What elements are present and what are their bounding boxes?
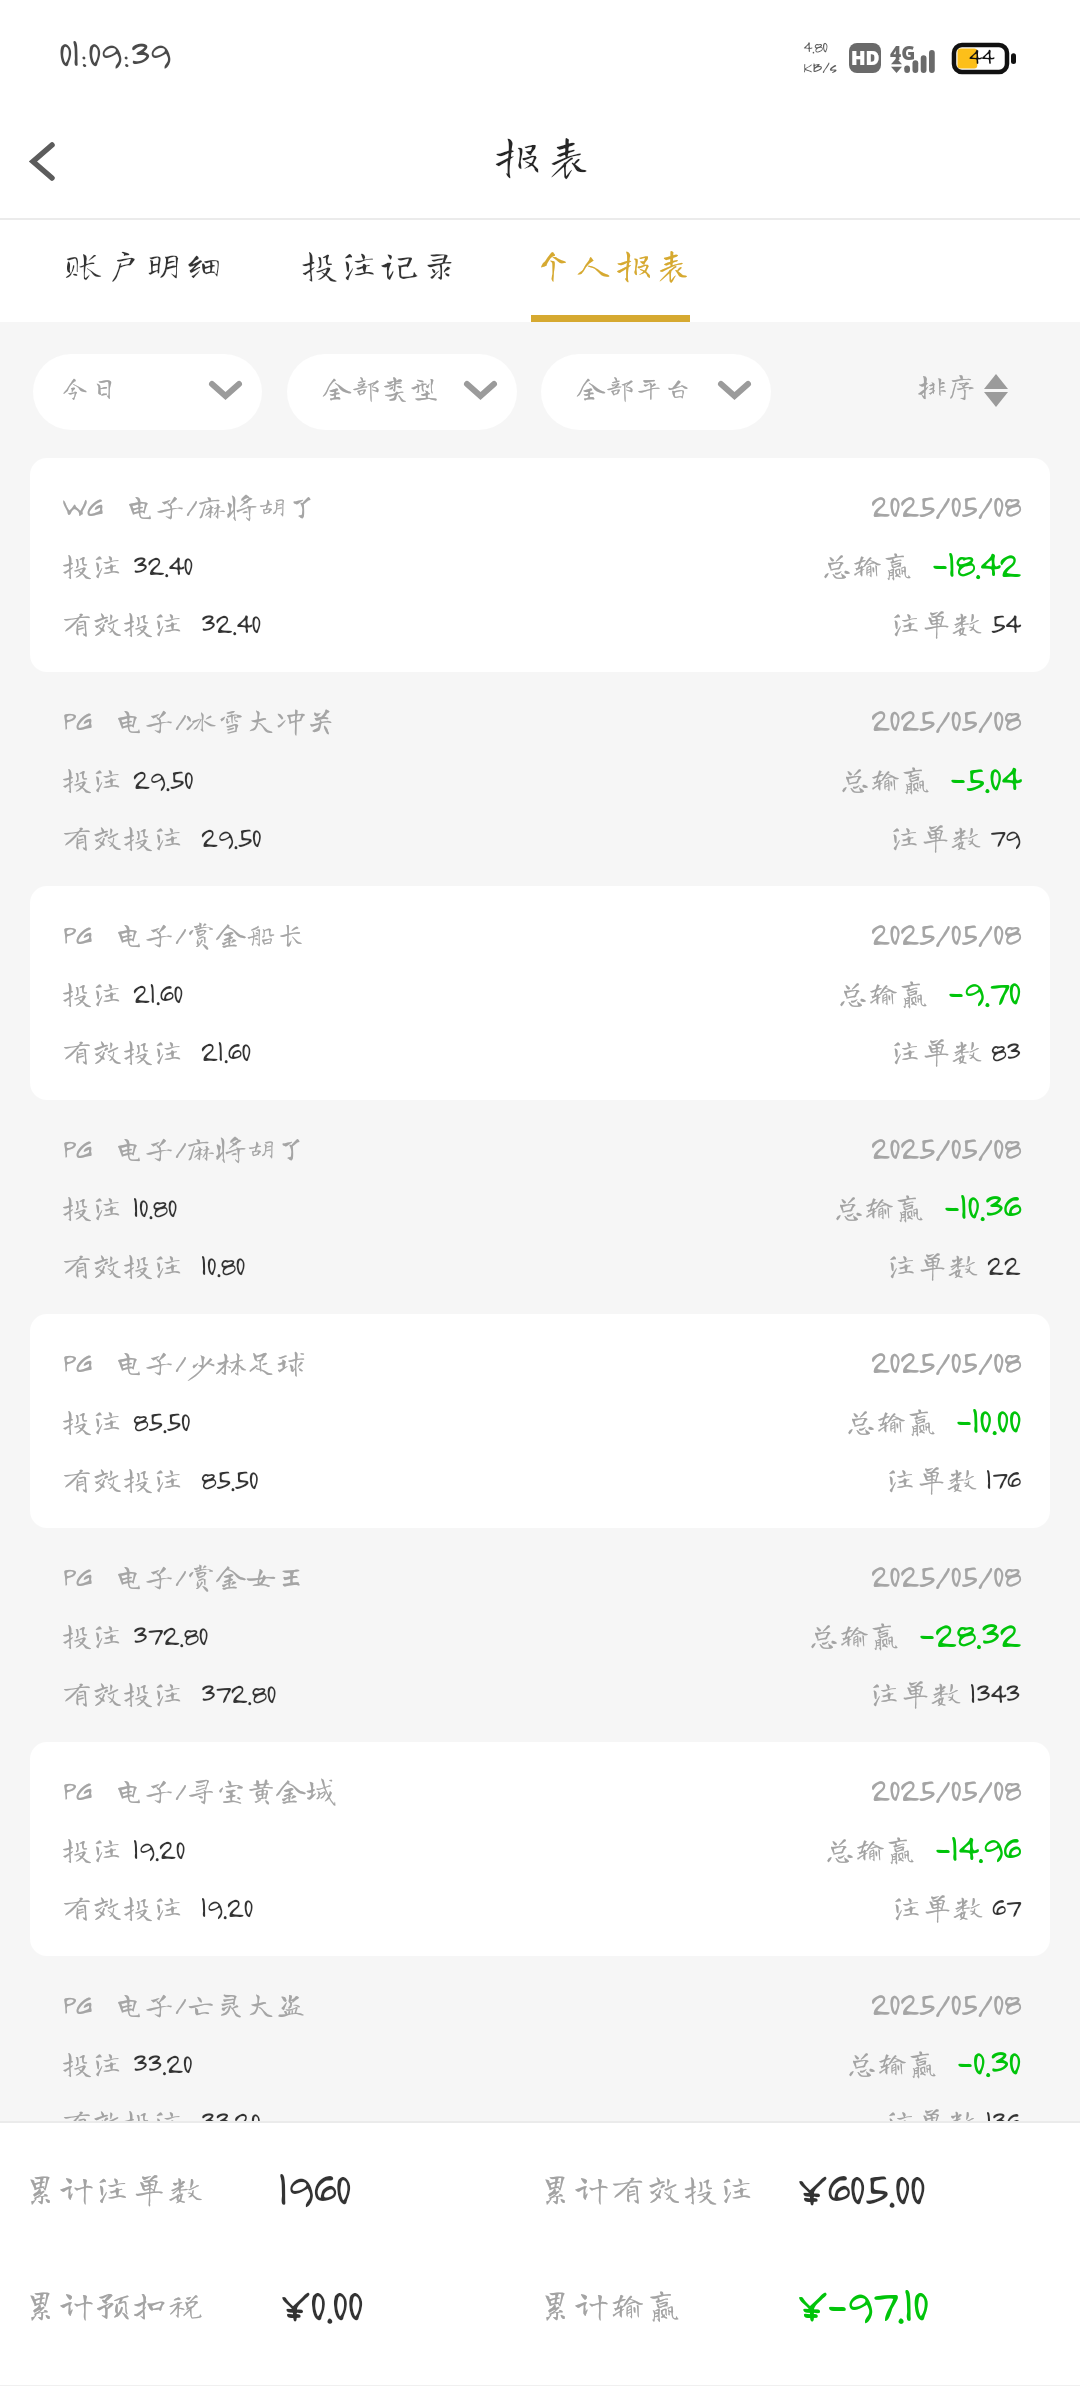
staticText: 0.00 — [309, 2274, 362, 2332]
button[interactable]: 账户明细 — [51, 220, 211, 322]
staticText: 44 — [968, 40, 994, 70]
staticText: 1960 — [277, 2158, 350, 2216]
staticText: 32.40 — [132, 546, 193, 582]
staticText: 总输赢 — [838, 978, 930, 1008]
staticText: -5.04 — [949, 754, 1020, 800]
button[interactable]: Back — [0, 113, 104, 217]
staticText: -10.00 — [955, 1396, 1020, 1442]
staticText: 有效投注 — [62, 2106, 184, 2121]
staticText: -9.70 — [947, 968, 1020, 1014]
staticText: 注单数 — [890, 822, 982, 852]
staticText: 有效投注 — [62, 608, 184, 638]
staticText: PG — [62, 1770, 92, 1808]
staticText: 有效投注 — [62, 1250, 184, 1280]
staticText: 10.80 — [200, 1246, 245, 1282]
button[interactable]: 全部类型 — [287, 354, 517, 430]
staticText: 29.50 — [200, 818, 261, 854]
staticText: 372.80 — [200, 1674, 276, 1710]
staticText: 有效投注 — [62, 1036, 184, 1066]
button[interactable]: PG — [30, 886, 1050, 1100]
staticText: 有效投注 — [62, 1678, 184, 1708]
staticText: ¥ — [797, 2274, 821, 2332]
staticText: ¥ — [280, 2274, 304, 2332]
staticText: 今日 — [61, 373, 120, 401]
staticText: 32.40 — [200, 604, 261, 640]
staticText: 176 — [985, 1460, 1020, 1496]
button[interactable]: PG — [30, 1742, 1050, 1956]
button[interactable]: 排序 Sort — [918, 374, 1012, 407]
staticText: 累计有效投注 — [538, 2171, 757, 2205]
staticText: 个人报表 — [535, 245, 695, 282]
staticText: 4G — [890, 40, 916, 66]
staticText: 605.00 — [826, 2158, 924, 2216]
button[interactable]: PG — [30, 1100, 1050, 1314]
staticText: 电子/少林足球 — [114, 1347, 307, 1377]
staticText: 2025/05/08 — [870, 1983, 1020, 2023]
staticText: 累计输赢 — [538, 2287, 684, 2321]
staticText: 33.20 — [200, 2102, 260, 2121]
staticText: 投注 — [62, 764, 123, 794]
staticText: 投注 — [62, 1834, 123, 1864]
button[interactable]: 投注记录 — [287, 220, 447, 322]
staticText: 19.20 — [132, 1830, 185, 1866]
staticText: 21.60 — [200, 1032, 251, 1068]
staticText: 136 — [985, 2102, 1020, 2121]
staticText: 电子/麻将胡了 — [114, 1133, 307, 1163]
button[interactable]: 全部平台 — [541, 354, 771, 430]
staticText: 全部平台 — [577, 373, 694, 401]
staticText: 电子/麻将胡了 — [125, 491, 318, 521]
staticText: WG — [62, 486, 103, 524]
button[interactable]: PG — [30, 672, 1050, 886]
staticText: 注单数 — [891, 608, 983, 638]
staticText: 2025/05/08 — [870, 699, 1020, 739]
staticText: 电子/寻宝黄金城 — [114, 1775, 337, 1805]
staticText: 372.80 — [132, 1616, 208, 1652]
staticText: 投注 — [62, 550, 123, 580]
staticText: 54 — [990, 604, 1020, 640]
staticText: 总输赢 — [809, 1620, 901, 1650]
staticText: 注单数 — [870, 1678, 962, 1708]
staticText: PG — [62, 1128, 92, 1166]
staticText: 有效投注 — [62, 1464, 184, 1494]
staticText: -28.32 — [918, 1610, 1020, 1656]
staticText: 85.50 — [200, 1460, 258, 1496]
staticText: 累计预扣税 — [23, 2287, 205, 2321]
staticText: PG — [62, 1342, 92, 1380]
staticText: 有效投注 — [62, 822, 184, 852]
button[interactable]: PG — [30, 1314, 1050, 1528]
staticText: 33.20 — [132, 2044, 192, 2080]
staticText: 4.80 — [803, 36, 828, 56]
staticText: 2025/05/08 — [870, 913, 1020, 953]
staticText: -18.42 — [931, 540, 1020, 586]
staticText: 19.20 — [200, 1888, 253, 1924]
staticText: 总输赢 — [847, 2048, 939, 2078]
staticText: 全部类型 — [323, 373, 440, 401]
staticText: 注单数 — [891, 1036, 983, 1066]
button[interactable]: PG — [30, 1528, 1050, 1742]
staticText: 投注 — [62, 1192, 123, 1222]
staticText: 2025/05/08 — [870, 1555, 1020, 1595]
staticText: -0.30 — [956, 2038, 1020, 2084]
staticText: 总输赢 — [822, 550, 914, 580]
staticText: 注单数 — [886, 2106, 978, 2121]
staticText: 注单数 — [887, 1250, 979, 1280]
staticText: 总输赢 — [840, 764, 932, 794]
staticText: 电子/亡灵大盗 — [114, 1989, 307, 2019]
staticText: 投注 — [62, 2048, 123, 2078]
button[interactable]: WG — [30, 458, 1050, 672]
staticText: 有效投注 — [62, 1892, 184, 1922]
staticText: 2025/05/08 — [870, 1341, 1020, 1381]
staticText: 2025/05/08 — [870, 1769, 1020, 1809]
staticText: ¥ — [797, 2158, 821, 2216]
staticText: 总输赢 — [846, 1406, 938, 1436]
staticText: 79 — [989, 818, 1020, 854]
staticText: PG — [62, 914, 92, 952]
staticText: -14.96 — [934, 1824, 1020, 1870]
button[interactable]: 个人报表 — [521, 220, 681, 322]
staticText: 10.80 — [132, 1188, 177, 1224]
button[interactable]: 今日 — [33, 354, 262, 430]
button[interactable]: PG — [30, 1956, 1050, 2121]
staticText: 账户明细 — [65, 245, 225, 282]
staticText: 1343 — [969, 1674, 1020, 1710]
staticText: 01:09:39 — [58, 28, 170, 76]
